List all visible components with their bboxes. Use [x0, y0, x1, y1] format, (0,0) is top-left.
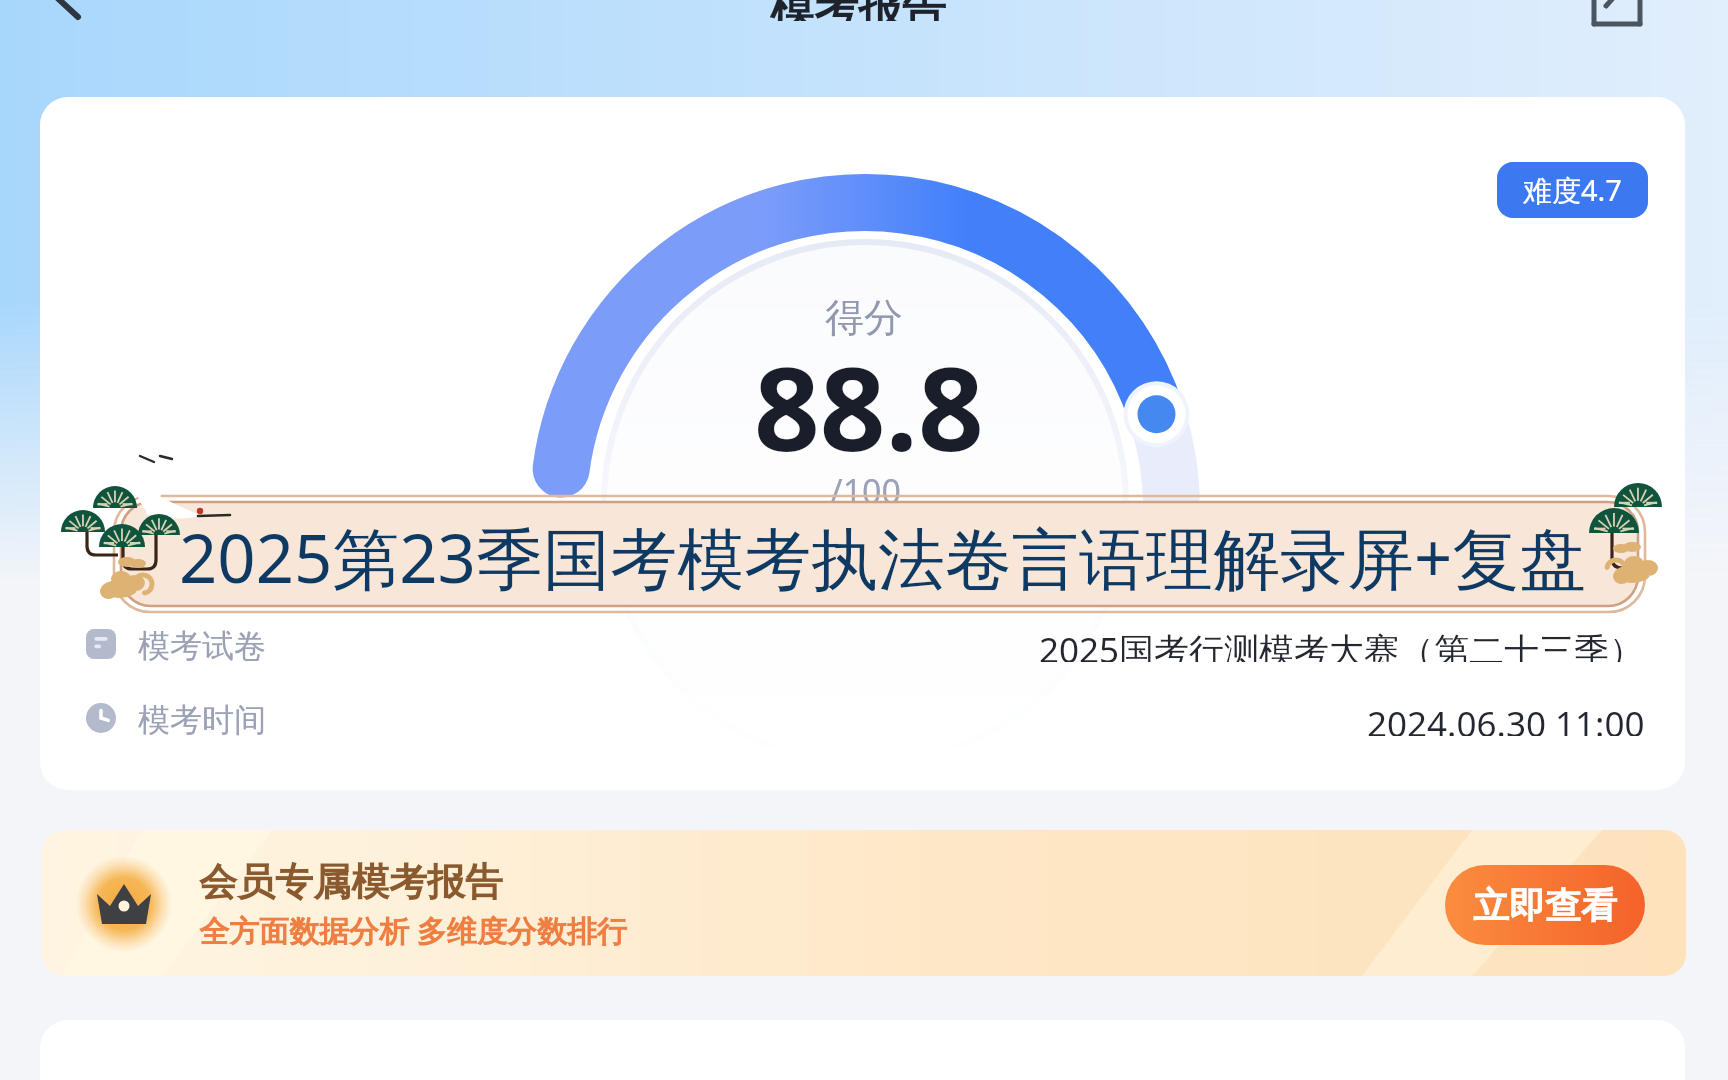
staticText: 全方面数据分析 多维度分数排行 — [199, 910, 627, 951]
button[interactable]: 立即查看 — [1445, 865, 1645, 945]
staticText: 难度4.7 — [1523, 170, 1622, 210]
staticText: 立即查看 — [1473, 883, 1617, 928]
staticText: 2025国考行测模考大赛（第二十三季） — [1039, 626, 1645, 662]
staticText: 88.8 — [754, 328, 984, 485]
staticText: 模考报告 — [770, 0, 946, 21]
button[interactable]: Back — [20, 0, 84, 5]
staticText: 模考时间 — [138, 700, 266, 736]
staticText: 2025第23季国考模考执法卷言语理解录屏+复盘 — [179, 511, 1587, 603]
button[interactable]: 会员专属模考报告 — [42, 830, 1686, 976]
staticText: 会员专属模考报告 — [199, 858, 503, 906]
staticText: 2024.06.30 11:00 — [1367, 700, 1645, 736]
button[interactable]: Share — [1582, 0, 1648, 12]
staticText: 得分 — [825, 293, 903, 342]
staticText: 模考试卷 — [138, 626, 266, 662]
staticText: /100 — [830, 468, 901, 514]
button[interactable]: 难度4.7 — [1497, 162, 1648, 218]
